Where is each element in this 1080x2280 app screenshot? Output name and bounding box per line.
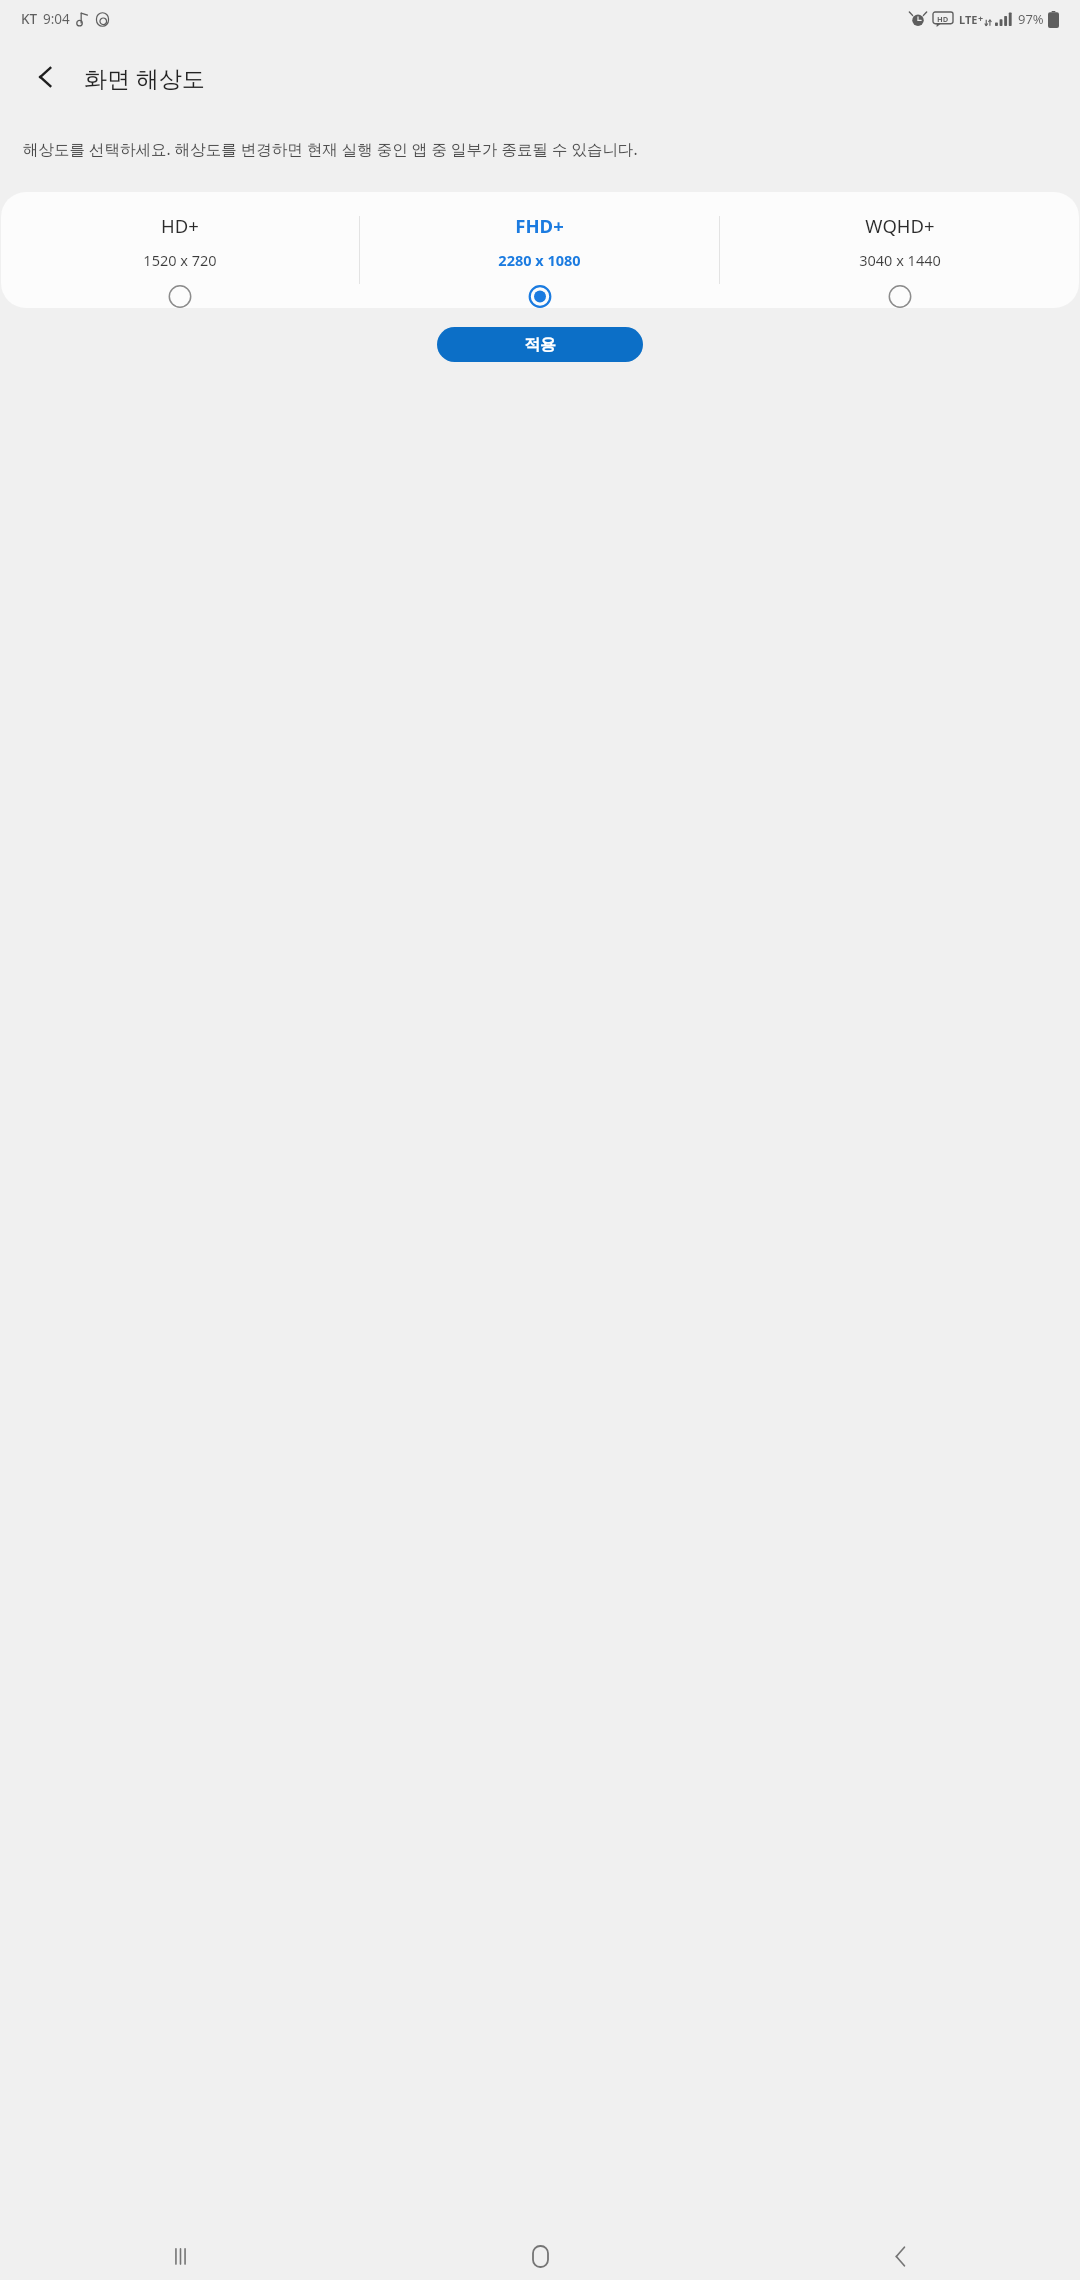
- button[interactable]: Recents: [0, 2232, 360, 2280]
- button[interactable]: HD+: [1, 192, 359, 308]
- staticText: 화면 해상도: [84, 62, 205, 93]
- button[interactable]: Back: [720, 2232, 1080, 2280]
- staticText: 2280 x 1080: [498, 250, 581, 270]
- staticText: 적용: [524, 335, 556, 355]
- staticText: +: [978, 12, 984, 24]
- button[interactable]: Home: [360, 2232, 720, 2280]
- staticText: HD: [937, 14, 949, 24]
- staticText: WQHD+: [865, 213, 935, 238]
- staticText: 1520 x 720: [143, 250, 217, 270]
- button[interactable]: FHD+: [360, 192, 719, 308]
- staticText: LTE: [959, 12, 978, 27]
- staticText: 97%: [1018, 10, 1044, 28]
- button[interactable]: WQHD+: [720, 192, 1079, 308]
- staticText: 해상도를 선택하세요. 해상도를 변경하면 현재 실행 중인 앱 중 일부가 종…: [23, 138, 638, 159]
- button[interactable]: Back: [18, 49, 74, 105]
- staticText: 9:04: [43, 10, 70, 28]
- staticText: HD+: [161, 213, 199, 238]
- staticText: 3040 x 1440: [859, 250, 941, 270]
- button[interactable]: 적용: [437, 327, 643, 362]
- staticText: FHD+: [515, 213, 564, 238]
- staticText: KT: [21, 10, 38, 28]
